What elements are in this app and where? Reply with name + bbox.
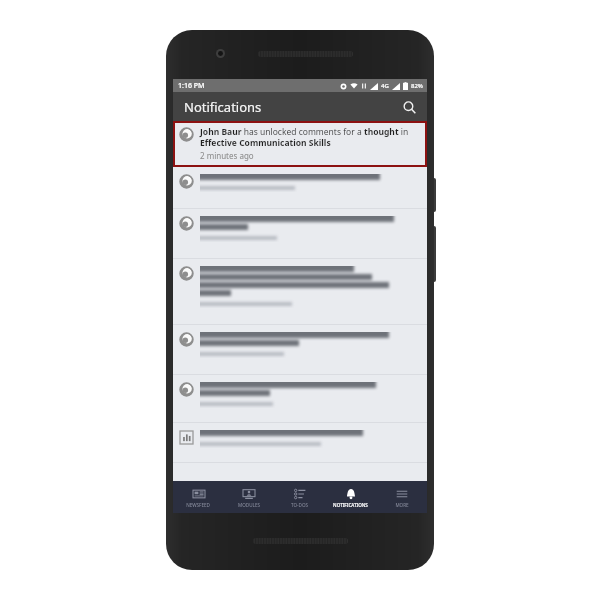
button[interactable] bbox=[173, 325, 427, 375]
button[interactable] bbox=[173, 209, 427, 259]
staticText: Notifications bbox=[184, 98, 262, 116]
button[interactable]: NEWSFEED bbox=[173, 481, 223, 513]
button[interactable]: MODULES bbox=[223, 481, 274, 513]
button[interactable]: MORE bbox=[376, 481, 427, 513]
staticText: NOTIFICATIONS bbox=[333, 502, 368, 508]
button[interactable] bbox=[173, 259, 427, 325]
staticText: 4G bbox=[381, 82, 389, 90]
staticText: 82% bbox=[411, 82, 423, 90]
button[interactable]: TO-DOS bbox=[274, 481, 325, 513]
staticText: MORE bbox=[395, 502, 409, 508]
staticText: John Baur has unlocked comments for a th… bbox=[200, 126, 421, 148]
staticText: TO-DOS bbox=[291, 502, 308, 508]
button[interactable] bbox=[173, 375, 427, 423]
button[interactable]: John Baur has unlocked comments for a th… bbox=[173, 121, 427, 167]
button[interactable]: Search bbox=[397, 95, 421, 119]
staticText: 2 minutes ago bbox=[200, 150, 254, 161]
button[interactable] bbox=[173, 167, 427, 209]
button[interactable] bbox=[173, 423, 427, 463]
staticText: MODULES bbox=[238, 502, 260, 508]
staticText: 1:16 PM bbox=[178, 81, 205, 91]
staticText: NEWSFEED bbox=[186, 502, 210, 508]
button[interactable]: NOTIFICATIONS bbox=[325, 481, 376, 513]
